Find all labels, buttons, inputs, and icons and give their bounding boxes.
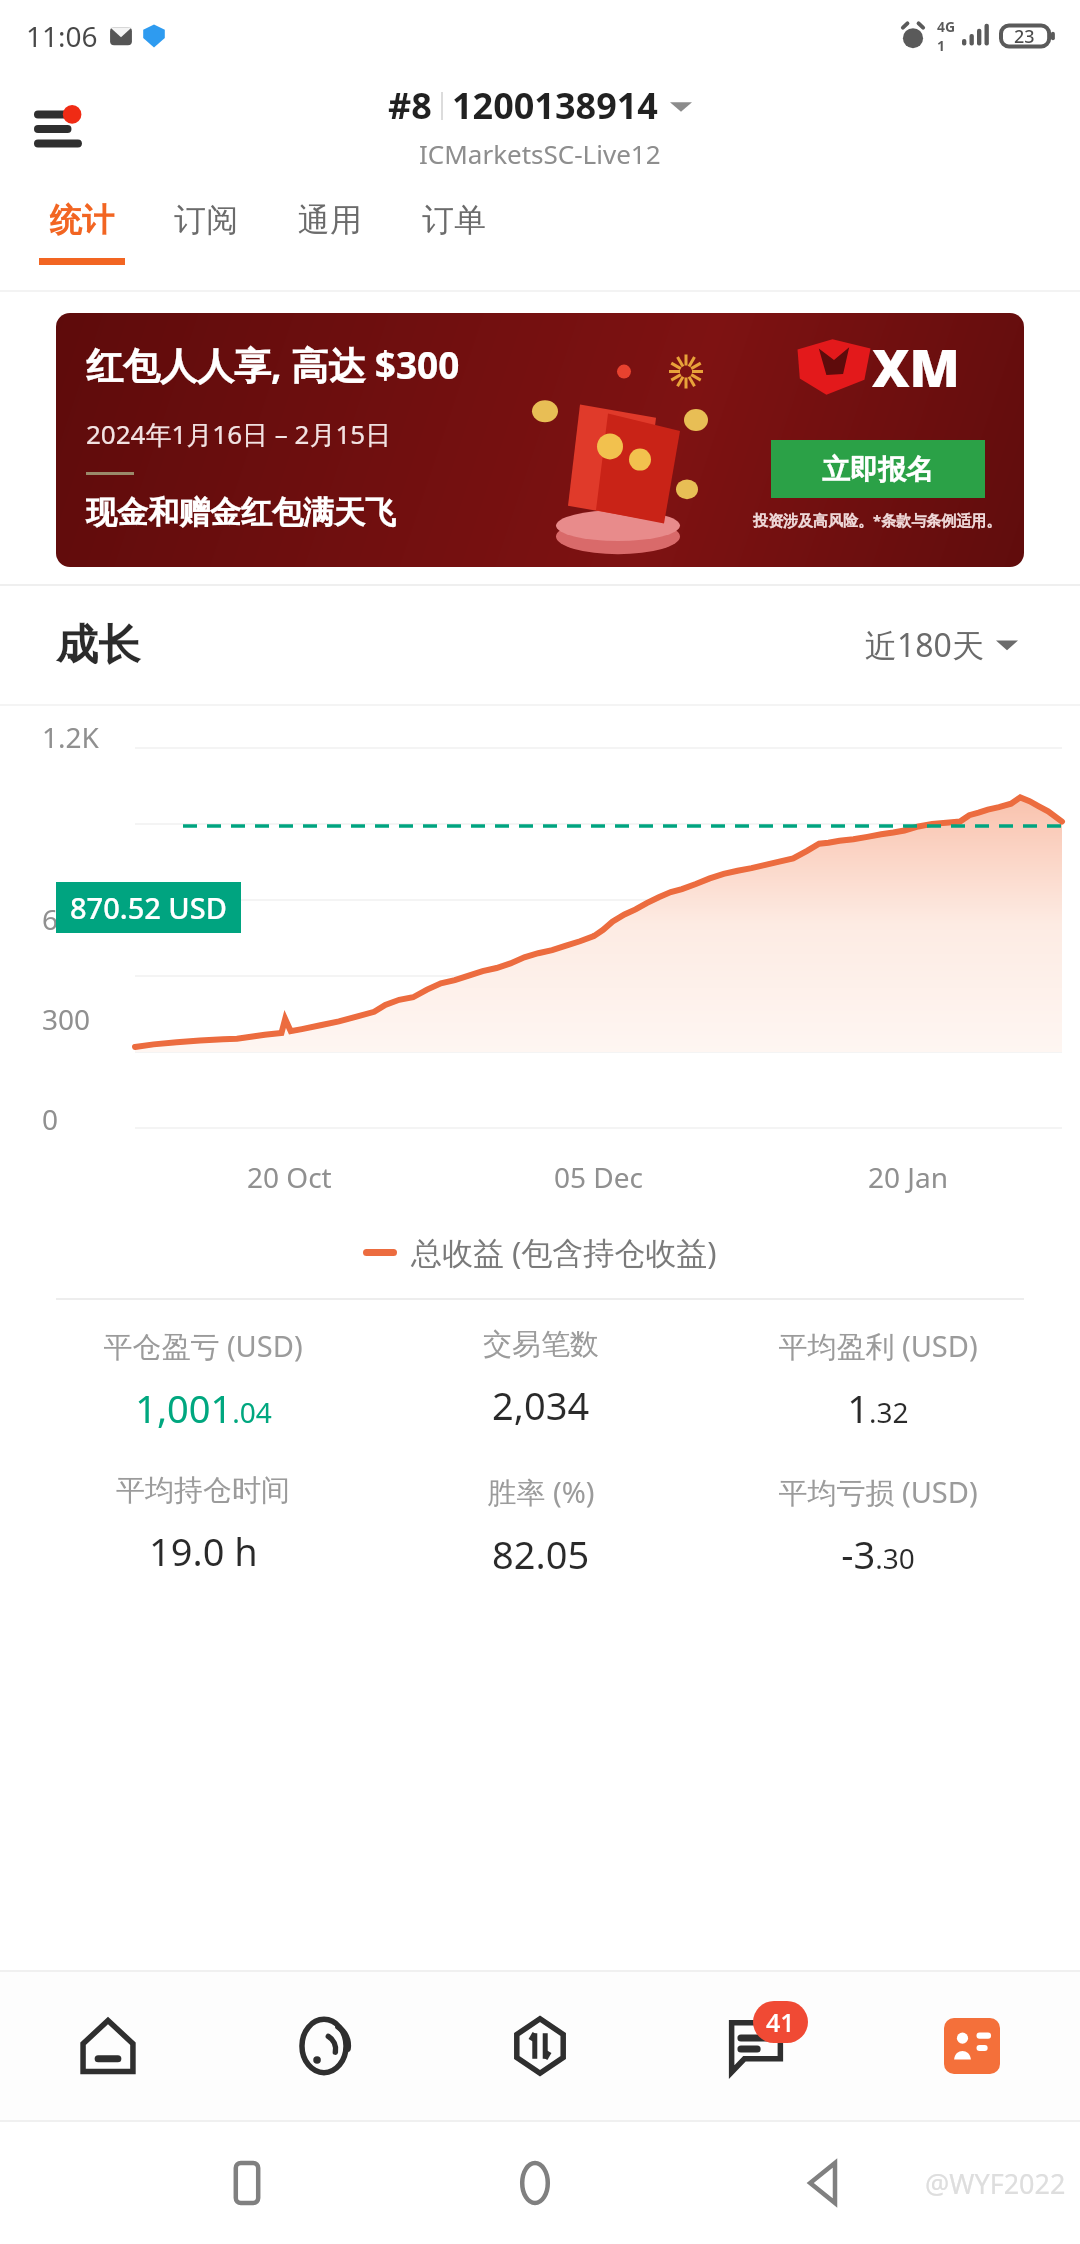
button[interactable]: 统计	[20, 180, 144, 290]
staticText: 82.05	[492, 1528, 590, 1580]
staticText: @WYF2022	[925, 2165, 1066, 2202]
staticText: 11:06	[26, 17, 98, 55]
button[interactable]: 平均持仓时间	[34, 1472, 372, 1577]
staticText: 20 Jan	[868, 1158, 948, 1196]
staticText: 2,034	[492, 1379, 590, 1431]
button[interactable]: 平均盈利 (USD)	[709, 1326, 1046, 1434]
staticText: 2024年1月16日 – 2月15日	[86, 416, 392, 452]
button[interactable]: Home	[53, 1991, 163, 2101]
staticText: 600	[42, 900, 91, 938]
staticText: 平均盈利 (USD)	[778, 1326, 978, 1366]
button[interactable]: 订单	[392, 180, 516, 290]
button[interactable]: 通用	[268, 180, 392, 290]
staticText: 20 Oct	[247, 1158, 332, 1196]
staticText: 平仓盈亏 (USD)	[103, 1326, 303, 1366]
button[interactable]: 红包人人享, 高达 $300	[56, 313, 1024, 567]
button[interactable]: 交易笔数	[372, 1326, 709, 1431]
staticText: 1.32	[847, 1382, 909, 1434]
staticText: 平均亏损 (USD)	[778, 1472, 978, 1512]
staticText: 通用	[298, 200, 362, 240]
staticText: 投资涉及高风险。*条款与条例适用。	[753, 510, 1002, 530]
button[interactable]: Messages	[701, 1991, 811, 2101]
button[interactable]: Back	[783, 2143, 863, 2223]
button[interactable]: 平均亏损 (USD)	[709, 1472, 1046, 1580]
staticText: 平均持仓时间	[116, 1472, 290, 1509]
button[interactable]: Recents	[207, 2143, 287, 2223]
staticText: 胜率 (%)	[487, 1472, 595, 1512]
staticText: 近180天	[865, 623, 984, 667]
staticText: 交易笔数	[483, 1326, 599, 1363]
button[interactable]: 胜率 (%)	[372, 1472, 709, 1580]
staticText: 订阅	[174, 200, 238, 240]
button[interactable]: 平仓盈亏 (USD)	[34, 1326, 372, 1434]
staticText: XM	[872, 331, 960, 402]
staticText: 成长	[56, 619, 140, 672]
staticText: #8	[388, 81, 432, 130]
button[interactable]: 订阅	[144, 180, 268, 290]
staticText: 1.2K	[42, 718, 99, 756]
staticText: 0	[42, 1100, 59, 1138]
staticText: 现金和赠金红包满天飞	[86, 493, 396, 532]
staticText: 红包人人享, 高达 $300	[86, 339, 460, 390]
staticText: 立即报名	[822, 452, 934, 487]
staticText: 订单	[422, 200, 486, 240]
staticText: 1	[937, 36, 946, 55]
button[interactable]: Menu	[24, 86, 104, 166]
button[interactable]: #8	[388, 81, 692, 171]
staticText: 4G	[937, 17, 956, 36]
staticText: ICMarketsSC-Live12	[419, 136, 661, 171]
staticText: 870.52 USD	[70, 888, 227, 927]
staticText: 41	[766, 2005, 795, 2039]
button[interactable]: Signals	[269, 1991, 379, 2101]
button[interactable]: 立即报名	[771, 440, 985, 498]
staticText: -3.30	[841, 1528, 915, 1580]
staticText: 统计	[50, 200, 114, 240]
button[interactable]: Account	[917, 1991, 1027, 2101]
button[interactable]: Home	[495, 2143, 575, 2223]
staticText: 23	[1014, 24, 1035, 49]
staticText: 1,001.04	[135, 1382, 272, 1434]
staticText: 300	[42, 1000, 91, 1038]
button[interactable]: 近180天	[859, 617, 1024, 673]
staticText: 05 Dec	[554, 1158, 643, 1196]
staticText: 19.0 h	[149, 1525, 258, 1577]
staticText: 总收益 (包含持仓收益)	[411, 1231, 717, 1273]
staticText: 1200138914	[452, 81, 658, 130]
button[interactable]: Trade	[485, 1991, 595, 2101]
